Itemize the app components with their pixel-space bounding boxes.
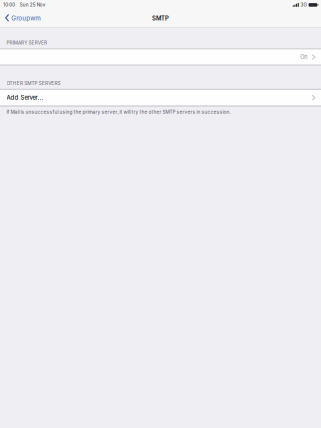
staticText: OTHER SMTP SERVERS: [6, 80, 60, 86]
staticText: PRIMARY SERVER: [6, 40, 47, 45]
staticText: Add Server...: [6, 94, 43, 101]
staticText: On: [300, 54, 307, 60]
button[interactable]: Groupwm: [0, 11, 46, 25]
staticText: 3G: [300, 2, 306, 8]
staticText: Sun 25 Nov: [20, 2, 46, 8]
staticText: SMTP: [152, 15, 169, 22]
button[interactable]: Primary server, On: [0, 49, 321, 65]
staticText: 10:00: [3, 2, 15, 8]
button[interactable]: Add Server...: [0, 90, 321, 105]
staticText: Groupwm: [11, 14, 40, 22]
staticText: If Mail is unsuccessful using the primar…: [6, 109, 230, 115]
